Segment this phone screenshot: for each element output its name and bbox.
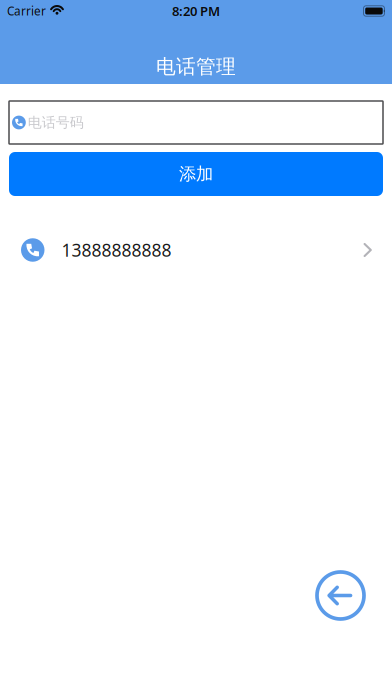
button[interactable]: 添加 (9, 152, 383, 196)
staticText: 8:20 PM (172, 2, 220, 20)
staticText: 电话号码 (28, 114, 84, 131)
staticText: Carrier (7, 3, 46, 19)
button[interactable]: 13888888888 (0, 224, 392, 276)
button[interactable]: Back (317, 572, 364, 619)
staticText: 13888888888 (61, 238, 171, 262)
staticText: 电话管理 (156, 54, 236, 79)
staticText: 添加 (179, 163, 213, 185)
